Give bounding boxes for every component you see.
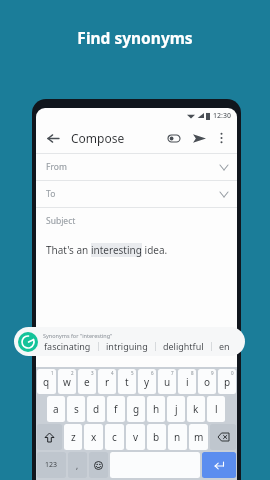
staticText: e: [84, 375, 90, 389]
button[interactable]: delightful: [162, 340, 205, 352]
button[interactable]: a: [47, 396, 65, 422]
button[interactable]: v: [126, 424, 145, 450]
staticText: interesting: [91, 243, 142, 257]
button[interactable]: c: [105, 424, 124, 450]
button[interactable]: g: [127, 396, 145, 422]
button[interactable]: k: [187, 396, 205, 422]
button[interactable]: More options: [213, 130, 229, 146]
staticText: c: [112, 430, 117, 444]
staticText: d: [93, 402, 100, 416]
staticText: 123: [45, 460, 58, 470]
button[interactable]: Subject: [36, 208, 237, 234]
staticText: fascinating: [44, 340, 91, 352]
staticText: en: [219, 340, 230, 352]
staticText: k: [193, 402, 199, 416]
staticText: Compose: [71, 130, 125, 146]
button[interactable]: p: [218, 369, 236, 394]
staticText: x: [91, 430, 97, 444]
staticText: 0: [231, 370, 234, 376]
button[interactable]: To: [36, 181, 237, 207]
staticText: Subject: [46, 215, 76, 227]
staticText: n: [174, 430, 181, 444]
button[interactable]: Comma: [68, 452, 87, 478]
staticText: 5: [131, 370, 134, 376]
button[interactable]: o: [198, 369, 216, 394]
button[interactable]: h: [147, 396, 165, 422]
button[interactable]: Emoji: [89, 452, 108, 478]
button[interactable]: q: [37, 369, 56, 394]
staticText: i: [186, 375, 189, 389]
staticText: q: [43, 375, 50, 389]
button[interactable]: en: [218, 340, 231, 352]
button[interactable]: Send: [190, 129, 208, 147]
button[interactable]: t: [118, 369, 136, 394]
button[interactable]: e: [78, 369, 96, 394]
staticText: 4: [111, 370, 114, 376]
button[interactable]: Shift: [37, 424, 62, 450]
button[interactable]: w: [58, 369, 76, 394]
button[interactable]: Synonyms for "interesting": [14, 327, 245, 356]
staticText: idea.: [142, 243, 168, 257]
staticText: h: [153, 402, 160, 416]
button[interactable]: f: [107, 396, 125, 422]
staticText: s: [74, 402, 79, 416]
staticText: 7: [171, 370, 174, 376]
staticText: m: [194, 430, 204, 444]
staticText: 9: [211, 370, 214, 376]
button[interactable]: From: [36, 154, 237, 180]
staticText: f: [114, 402, 118, 416]
staticText: u: [164, 375, 171, 389]
staticText: v: [133, 430, 139, 444]
staticText: o: [204, 375, 211, 389]
button[interactable]: z: [64, 424, 82, 450]
button[interactable]: Attach file: [165, 129, 183, 147]
button[interactable]: d: [87, 396, 105, 422]
button[interactable]: Back: [44, 129, 62, 147]
staticText: intriguing: [106, 340, 148, 352]
button[interactable]: l: [207, 396, 225, 422]
staticText: w: [63, 375, 71, 389]
button[interactable]: fascinating: [43, 340, 92, 352]
staticText: To: [46, 188, 56, 200]
staticText: 8: [191, 370, 194, 376]
staticText: r: [105, 375, 110, 389]
staticText: a: [53, 402, 59, 416]
button[interactable]: Numbers: [37, 452, 66, 478]
staticText: l: [215, 402, 218, 416]
staticText: p: [224, 375, 231, 389]
button[interactable]: m: [189, 424, 208, 450]
staticText: That's an: [46, 243, 91, 257]
staticText: b: [153, 430, 160, 444]
staticText: y: [144, 375, 150, 389]
button[interactable]: r: [98, 369, 116, 394]
staticText: g: [133, 402, 140, 416]
button[interactable]: u: [158, 369, 176, 394]
staticText: 3: [91, 370, 94, 376]
staticText: 1: [51, 370, 54, 376]
staticText: delightful: [163, 340, 204, 352]
staticText: z: [71, 430, 76, 444]
staticText: From: [46, 161, 67, 173]
button[interactable]: b: [147, 424, 166, 450]
staticText: 2: [71, 370, 74, 376]
button[interactable]: n: [168, 424, 187, 450]
button[interactable]: Backspace: [210, 424, 236, 450]
button[interactable]: x: [84, 424, 103, 450]
button[interactable]: j: [167, 396, 185, 422]
button[interactable]: i: [178, 369, 196, 394]
button[interactable]: s: [67, 396, 85, 422]
button[interactable]: intriguing: [105, 340, 149, 352]
button[interactable]: y: [138, 369, 156, 394]
staticText: Synonyms for "interesting": [43, 332, 113, 339]
staticText: t: [125, 375, 129, 389]
button[interactable]: Enter: [202, 452, 236, 478]
staticText: 12:30: [213, 111, 231, 121]
staticText: j: [175, 402, 178, 416]
staticText: ,: [76, 460, 79, 471]
staticText: 6: [151, 370, 154, 376]
staticText: Find synonyms: [0, 27, 270, 48]
